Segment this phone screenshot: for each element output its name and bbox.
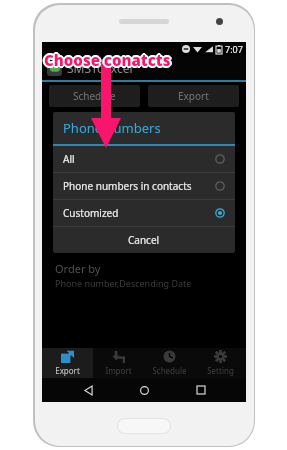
staticText: Choose conatcts [45, 51, 172, 71]
staticText: Phone numbers in contacts [63, 179, 192, 193]
staticText: Choose conatcts [44, 50, 171, 70]
button[interactable]: Cancel [53, 227, 235, 253]
button[interactable]: Back [77, 379, 99, 401]
button[interactable]: Export [42, 348, 93, 378]
button[interactable]: Import [93, 348, 144, 378]
staticText: Choose conatcts [46, 50, 173, 70]
button[interactable]: Export [148, 85, 239, 107]
staticText: Schedule [73, 89, 116, 103]
button[interactable]: All [53, 146, 235, 172]
staticText: Export [178, 89, 209, 103]
button[interactable]: Schedule [49, 85, 140, 107]
staticText: Customized [63, 206, 119, 220]
staticText: Cancel [128, 233, 160, 247]
button[interactable]: Customized [53, 200, 235, 226]
staticText: Choose conatcts [45, 49, 172, 69]
staticText: Choose conatcts [43, 49, 170, 69]
staticText: 7:07 [225, 43, 243, 55]
staticText: Choose conatcts [44, 48, 171, 68]
button[interactable]: Home [133, 379, 155, 401]
staticText: Choose conatcts [44, 52, 171, 72]
staticText: Phone numbers [63, 119, 161, 137]
button[interactable]: Setting [195, 348, 246, 378]
staticText: Choose conatcts [42, 50, 169, 70]
staticText: Export [55, 365, 80, 376]
staticText: Phone number,Descending Date [55, 277, 192, 289]
staticText: Setting [207, 365, 234, 376]
staticText: Schedule [152, 365, 187, 376]
staticText: Order by [55, 261, 101, 276]
staticText: Import [105, 365, 132, 376]
staticText: SMSToExcel [67, 60, 133, 76]
button[interactable]: Schedule [144, 348, 195, 378]
staticText: Choose conatcts [43, 51, 170, 71]
button[interactable]: Recents [190, 379, 212, 401]
button[interactable]: Phone numbers in contacts [53, 173, 235, 199]
staticText: All [63, 152, 75, 166]
